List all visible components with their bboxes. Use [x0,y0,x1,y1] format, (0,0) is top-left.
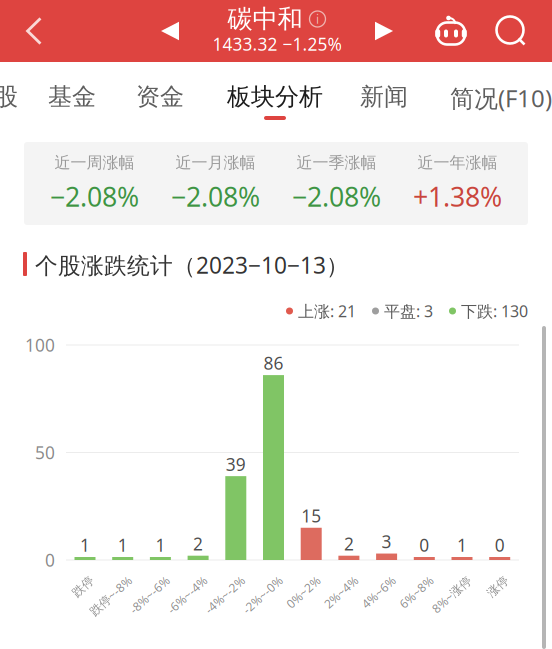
staticText: 0%~2% [272,572,313,588]
staticText: 86 [263,352,283,375]
staticText: 0 [495,533,505,556]
button[interactable]: Back [9,0,59,62]
staticText: 股 [0,82,18,111]
staticText: 基金 [48,82,96,111]
staticText: 碳中和 [227,3,302,34]
staticText: −2.08% [171,179,260,214]
staticText: 1 [155,533,165,556]
button[interactable]: Previous sector [147,0,193,62]
button[interactable]: 股 [0,62,26,125]
staticText: 3 [382,530,392,553]
staticText: 板块分析 [227,82,323,111]
staticText: 近一年涨幅 [417,153,497,173]
staticText: -6%~-4% [151,572,200,588]
staticText: 近一月涨幅 [175,153,255,173]
staticText: 1 [118,533,128,556]
staticText: 2%~4% [310,572,351,588]
staticText: -8%~-6% [113,572,162,588]
staticText: 0 [45,548,55,571]
staticText: 近一周涨幅 [54,153,134,173]
staticText: 8%~涨停 [416,572,464,588]
staticText: 新闻 [360,82,408,111]
staticText: 1 [457,533,467,556]
button[interactable]: 新闻 [355,62,413,125]
button[interactable]: 简况(F10) [445,62,552,125]
staticText: 100 [25,333,55,356]
staticText: 个股涨跌统计（2023−10−13） [35,250,349,280]
staticText: +1.38% [413,179,502,214]
staticText: 0 [419,533,429,556]
staticText: −2.08% [292,179,381,214]
staticText: −2.08% [50,179,139,214]
staticText: 涨停 [478,573,502,588]
staticText: 简况(F10) [450,82,552,114]
button[interactable]: Next sector [361,0,407,62]
staticText: 2 [344,532,354,555]
staticText: 1433.32 −1.25% [212,32,341,55]
staticText: 39 [226,453,246,476]
staticText: 15 [301,504,321,527]
staticText: 4%~6% [348,572,389,588]
staticText: i [316,11,319,27]
button[interactable]: Search [484,0,538,62]
staticText: 平盘: 3 [384,300,433,322]
staticText: 1 [80,533,90,556]
staticText: 6%~8% [385,572,426,588]
staticText: 下跌: 130 [461,300,528,322]
staticText: 2 [193,532,203,555]
button[interactable]: 板块分析 [223,62,327,125]
staticText: 跌停 [63,573,87,588]
staticText: -4%~-2% [189,572,238,588]
staticText: -2%~-0% [226,572,275,588]
staticText: 资金 [136,82,184,111]
staticText: 上涨: 21 [298,300,356,322]
staticText: 跌停~-8% [73,572,125,588]
staticText: 50 [35,441,55,464]
staticText: 近一季涨幅 [296,153,376,173]
button[interactable]: AI assistant [424,0,478,62]
button[interactable]: 基金 [43,62,101,125]
button[interactable]: 资金 [131,62,189,125]
